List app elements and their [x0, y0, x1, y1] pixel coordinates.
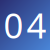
staticText: 04 [3, 2, 46, 48]
button[interactable]: 04 [0, 0, 50, 50]
